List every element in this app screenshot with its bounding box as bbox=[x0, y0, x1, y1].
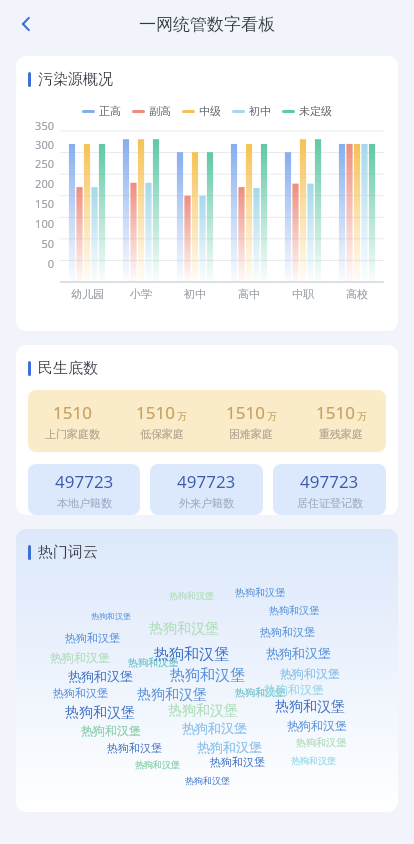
staticText: 初中 bbox=[249, 104, 271, 118]
staticText: 热狗和汉堡 bbox=[91, 611, 131, 621]
staticText: 外来户籍数 bbox=[179, 496, 234, 510]
staticText: 万 bbox=[267, 410, 277, 423]
staticText: 热狗和汉堡 bbox=[65, 704, 135, 722]
staticText: 万 bbox=[177, 410, 187, 423]
button[interactable]: 1510 bbox=[206, 401, 296, 441]
staticText: 热狗和汉堡 bbox=[128, 656, 178, 669]
staticText: 250 bbox=[16, 156, 54, 171]
staticText: 150 bbox=[16, 196, 54, 211]
staticText: 1510 bbox=[226, 401, 265, 424]
staticText: 300 bbox=[16, 137, 54, 152]
staticText: 热狗和汉堡 bbox=[235, 686, 285, 699]
button[interactable]: 1510 bbox=[296, 401, 386, 441]
staticText: 热狗和汉堡 bbox=[182, 720, 247, 736]
staticText: 热狗和汉堡 bbox=[185, 775, 230, 786]
staticText: 1510 bbox=[136, 401, 175, 424]
button[interactable]: 497723 bbox=[150, 464, 263, 515]
staticText: 热狗和汉堡 bbox=[169, 590, 214, 601]
staticText: 1510 bbox=[53, 401, 92, 424]
button[interactable]: Back bbox=[6, 4, 46, 44]
staticText: 热狗和汉堡 bbox=[107, 741, 162, 755]
staticText: 中职 bbox=[292, 287, 314, 301]
staticText: 困难家庭 bbox=[229, 427, 273, 441]
staticText: 热狗和汉堡 bbox=[269, 604, 319, 617]
staticText: 497723 bbox=[300, 470, 359, 493]
staticText: 497723 bbox=[55, 470, 114, 493]
staticText: 高校 bbox=[346, 287, 368, 301]
staticText: 497723 bbox=[177, 470, 236, 493]
staticText: 幼儿园 bbox=[71, 287, 104, 301]
staticText: 1510 bbox=[316, 401, 355, 424]
staticText: 热狗和汉堡 bbox=[197, 739, 262, 755]
staticText: 热狗和汉堡 bbox=[135, 759, 180, 770]
staticText: 一网统管数字看板 bbox=[139, 14, 275, 35]
staticText: 上门家庭数 bbox=[45, 427, 100, 441]
staticText: 初中 bbox=[184, 287, 206, 301]
button[interactable]: 污染源概况 bbox=[16, 56, 398, 331]
staticText: 热狗和汉堡 bbox=[170, 666, 245, 685]
staticText: 热狗和汉堡 bbox=[65, 631, 120, 645]
button[interactable]: 热门词云 bbox=[16, 529, 398, 812]
staticText: 热狗和汉堡 bbox=[53, 686, 108, 700]
staticText: 热狗和汉堡 bbox=[264, 682, 324, 697]
staticText: 热狗和汉堡 bbox=[260, 625, 315, 639]
staticText: 热狗和汉堡 bbox=[154, 645, 229, 664]
staticText: 热狗和汉堡 bbox=[50, 650, 110, 665]
staticText: 热狗和汉堡 bbox=[275, 698, 345, 716]
staticText: 万 bbox=[357, 410, 367, 423]
staticText: 热门词云 bbox=[38, 543, 98, 562]
staticText: 副高 bbox=[149, 104, 171, 118]
staticText: 100 bbox=[16, 216, 54, 231]
button[interactable]: 497723 bbox=[273, 464, 386, 515]
staticText: 污染源概况 bbox=[38, 70, 113, 89]
staticText: 热狗和汉堡 bbox=[291, 755, 336, 766]
staticText: 热狗和汉堡 bbox=[210, 755, 265, 769]
staticText: 小学 bbox=[130, 287, 152, 301]
staticText: 热狗和汉堡 bbox=[81, 723, 141, 738]
staticText: 热狗和汉堡 bbox=[287, 718, 347, 733]
button[interactable]: 497723 bbox=[28, 464, 140, 515]
staticText: 热狗和汉堡 bbox=[168, 702, 238, 720]
staticText: 热狗和汉堡 bbox=[266, 645, 331, 661]
staticText: 本地户籍数 bbox=[57, 496, 112, 510]
staticText: 热狗和汉堡 bbox=[137, 686, 207, 704]
button[interactable]: 民生底数 bbox=[16, 345, 398, 515]
staticText: 民生底数 bbox=[38, 359, 98, 378]
staticText: 热狗和汉堡 bbox=[68, 668, 133, 684]
button[interactable]: 1510 bbox=[117, 401, 206, 441]
staticText: 0 bbox=[16, 256, 54, 271]
staticText: 未定级 bbox=[299, 104, 332, 118]
staticText: 热狗和汉堡 bbox=[235, 586, 285, 599]
staticText: 200 bbox=[16, 176, 54, 191]
staticText: 居住证登记数 bbox=[297, 496, 363, 510]
staticText: 热狗和汉堡 bbox=[280, 666, 340, 681]
staticText: 低保家庭 bbox=[140, 427, 184, 441]
staticText: 正高 bbox=[99, 104, 121, 118]
staticText: 高中 bbox=[238, 287, 260, 301]
staticText: 中级 bbox=[199, 104, 221, 118]
staticText: 热狗和汉堡 bbox=[149, 620, 219, 638]
staticText: 热狗和汉堡 bbox=[296, 736, 346, 749]
staticText: 350 bbox=[16, 118, 54, 133]
staticText: 50 bbox=[16, 236, 54, 251]
button[interactable]: 1510 bbox=[28, 401, 117, 441]
staticText: 重残家庭 bbox=[319, 427, 363, 441]
